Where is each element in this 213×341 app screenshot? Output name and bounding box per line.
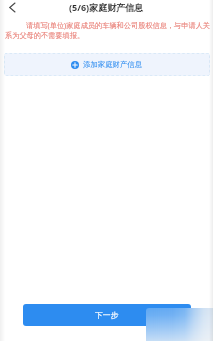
button[interactable]: 添加家庭财产信息: [4, 53, 210, 76]
staticText: 添加家庭财产信息: [83, 60, 143, 69]
staticText: 下一步: [95, 310, 119, 320]
staticText: (5/6)家庭财产信息: [69, 1, 144, 13]
button[interactable]: Back: [4, 0, 19, 15]
button[interactable]: 下一步: [23, 304, 191, 326]
staticText: 请填写(单位)家庭成员的车辆和公司股权信息，与申请人关 系为父母的不需要填报。: [5, 20, 213, 40]
